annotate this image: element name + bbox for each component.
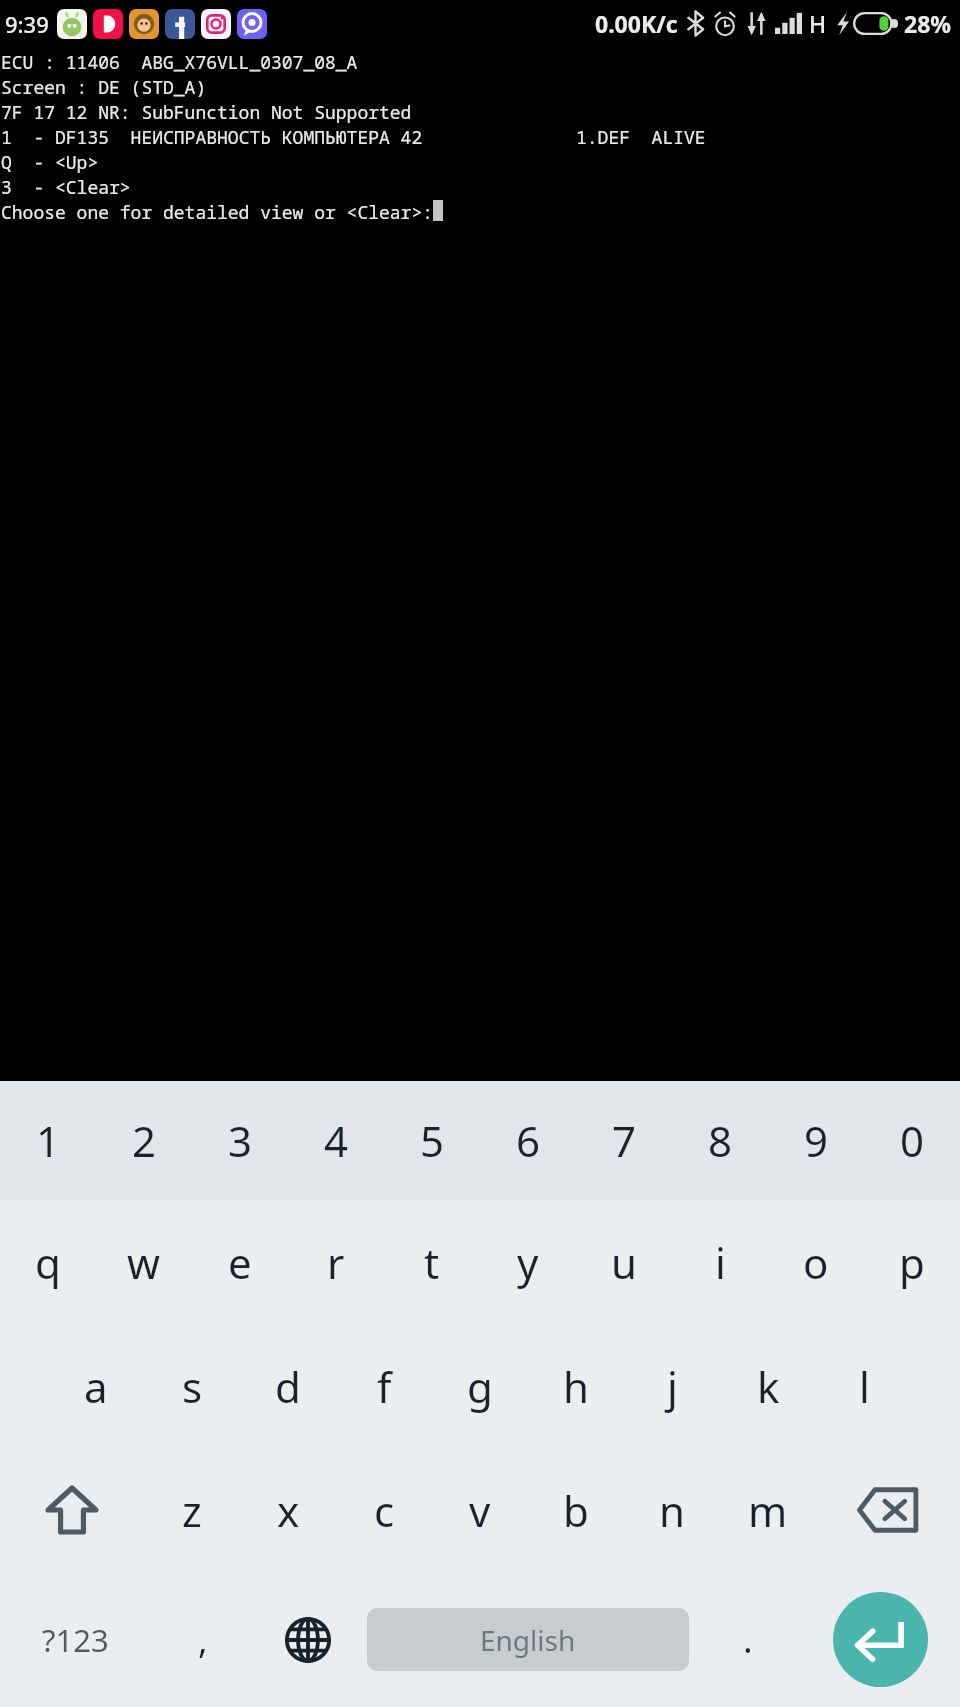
button[interactable]: l <box>816 1324 912 1448</box>
staticText: j <box>667 1358 678 1415</box>
staticText: Choose one for detailed view or <Clear>: <box>1 200 433 225</box>
staticText: 0 <box>900 1112 925 1169</box>
button[interactable]: t <box>384 1200 480 1324</box>
button[interactable]: Backspace <box>816 1448 960 1572</box>
staticText: 6 <box>516 1112 541 1169</box>
button[interactable]: k <box>720 1324 816 1448</box>
button[interactable]: 5 <box>384 1081 480 1200</box>
staticText: u <box>611 1234 637 1291</box>
staticText: o <box>803 1234 829 1291</box>
staticText: a <box>84 1358 108 1415</box>
staticText: y <box>517 1234 539 1291</box>
button[interactable]: j <box>624 1324 720 1448</box>
staticText: 0.00K/c <box>595 8 678 39</box>
button[interactable]: v <box>432 1448 528 1572</box>
staticText: z <box>182 1482 202 1539</box>
staticText: 9 <box>804 1112 829 1169</box>
button[interactable]: u <box>576 1200 672 1324</box>
other: Bluetooth <box>687 11 704 36</box>
button[interactable]: a <box>48 1324 144 1448</box>
staticText: m <box>748 1482 788 1539</box>
button[interactable]: Symbols <box>0 1572 150 1707</box>
staticText: H <box>809 8 827 39</box>
staticText: i <box>715 1234 726 1291</box>
staticText: 1.DEF ALIVE <box>576 125 706 150</box>
button[interactable]: m <box>720 1448 816 1572</box>
staticText: f <box>377 1358 392 1415</box>
button[interactable]: b <box>528 1448 624 1572</box>
button[interactable]: . <box>695 1572 800 1707</box>
staticText: v <box>469 1482 491 1539</box>
button[interactable]: q <box>0 1200 96 1324</box>
staticText: 1 - DF135 НЕИСПРАВНОСТЬ КОМПЬЮТЕРА 42 <box>1 125 423 150</box>
button[interactable]: English <box>367 1608 689 1671</box>
button[interactable]: y <box>480 1200 576 1324</box>
staticText: 28% <box>904 8 952 39</box>
staticText: ECU : 11406 ABG_X76VLL_0307_08_A <box>1 50 358 75</box>
button[interactable]: Shift <box>0 1448 144 1572</box>
button[interactable]: i <box>672 1200 768 1324</box>
button[interactable]: 6 <box>480 1081 576 1200</box>
other: Charging <box>835 11 851 36</box>
button[interactable]: r <box>288 1200 384 1324</box>
staticText: . <box>743 1615 753 1664</box>
button[interactable]: 8 <box>672 1081 768 1200</box>
other: Battery 28 percent <box>853 12 898 35</box>
staticText: e <box>228 1234 252 1291</box>
staticText: h <box>563 1358 589 1415</box>
staticText: 9:39 <box>5 9 49 39</box>
button[interactable]: c <box>336 1448 432 1572</box>
staticText: t <box>424 1234 440 1291</box>
staticText: 7 <box>612 1112 637 1169</box>
staticText: 2 <box>132 1112 157 1169</box>
button[interactable]: d <box>240 1324 336 1448</box>
staticText: c <box>374 1482 395 1539</box>
staticText: 5 <box>420 1112 445 1169</box>
staticText: English <box>480 1621 576 1659</box>
staticText: 1 <box>36 1112 61 1169</box>
staticText: x <box>277 1482 300 1539</box>
staticText: b <box>563 1482 589 1539</box>
button[interactable]: p <box>864 1200 960 1324</box>
button[interactable]: x <box>240 1448 336 1572</box>
button[interactable]: 3 <box>192 1081 288 1200</box>
button[interactable]: h <box>528 1324 624 1448</box>
button[interactable]: , <box>150 1572 255 1707</box>
staticText: 3 - <Clear> <box>1 175 131 200</box>
staticText: s <box>182 1358 203 1415</box>
button[interactable]: 9 <box>768 1081 864 1200</box>
staticText: n <box>659 1482 685 1539</box>
other: Data transfer <box>746 11 767 36</box>
button[interactable]: n <box>624 1448 720 1572</box>
staticText: p <box>899 1234 925 1291</box>
other: Alarm set <box>712 11 738 37</box>
button[interactable]: s <box>144 1324 240 1448</box>
button[interactable]: f <box>336 1324 432 1448</box>
button[interactable]: 1 <box>0 1081 96 1200</box>
staticText: 4 <box>324 1112 349 1169</box>
button[interactable]: 7 <box>576 1081 672 1200</box>
staticText: 3 <box>228 1112 253 1169</box>
button[interactable]: Enter <box>833 1592 928 1687</box>
staticText: r <box>327 1234 345 1291</box>
button[interactable]: e <box>192 1200 288 1324</box>
staticText: 8 <box>708 1112 733 1169</box>
button[interactable]: g <box>432 1324 528 1448</box>
button[interactable]: 0 <box>864 1081 960 1200</box>
staticText: l <box>859 1358 870 1415</box>
button[interactable]: z <box>144 1448 240 1572</box>
button[interactable]: 2 <box>96 1081 192 1200</box>
button[interactable]: 4 <box>288 1081 384 1200</box>
button[interactable]: w <box>96 1200 192 1324</box>
staticText: k <box>757 1358 780 1415</box>
button[interactable]: Change keyboard language <box>255 1572 360 1707</box>
staticText: g <box>467 1358 493 1415</box>
staticText: ?123 <box>42 1619 109 1661</box>
staticText: 7F 17 12 NR: SubFunction Not Supported <box>1 100 412 125</box>
staticText: , <box>198 1615 208 1664</box>
staticText: Q - <Up> <box>1 150 99 175</box>
staticText: Screen : DE (STD_A) <box>1 75 207 100</box>
button[interactable]: o <box>768 1200 864 1324</box>
staticText: w <box>127 1234 161 1291</box>
staticText: d <box>275 1358 301 1415</box>
